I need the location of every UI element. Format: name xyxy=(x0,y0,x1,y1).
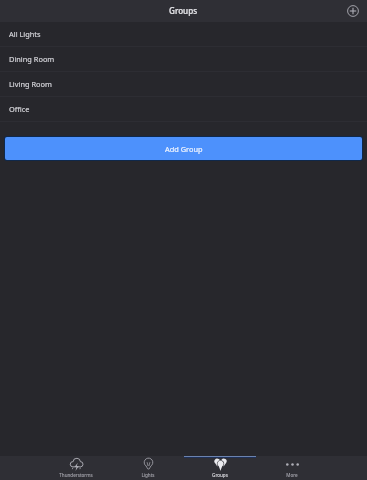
button[interactable]: Lights xyxy=(112,456,184,480)
button[interactable]: Living Room xyxy=(0,72,367,97)
staticText: Office xyxy=(9,104,30,114)
staticText: Thunderstorms xyxy=(59,472,93,478)
button[interactable]: Add group xyxy=(344,2,362,20)
button[interactable]: Dining Room xyxy=(0,47,367,72)
staticText: Add Group xyxy=(165,144,203,154)
button[interactable]: Thunderstorms xyxy=(40,456,112,480)
button[interactable]: Groups xyxy=(184,456,256,480)
button[interactable]: More xyxy=(256,456,328,480)
button[interactable]: All Lights xyxy=(0,22,367,47)
staticText: Groups xyxy=(169,5,198,16)
button[interactable]: Add Group xyxy=(5,137,362,160)
staticText: Lights xyxy=(141,472,155,478)
staticText: Living Room xyxy=(9,79,52,89)
staticText: More xyxy=(286,472,298,478)
staticText: All Lights xyxy=(9,29,41,39)
staticText: Groups xyxy=(212,472,228,478)
button[interactable]: Office xyxy=(0,97,367,122)
staticText: Dining Room xyxy=(9,54,55,64)
